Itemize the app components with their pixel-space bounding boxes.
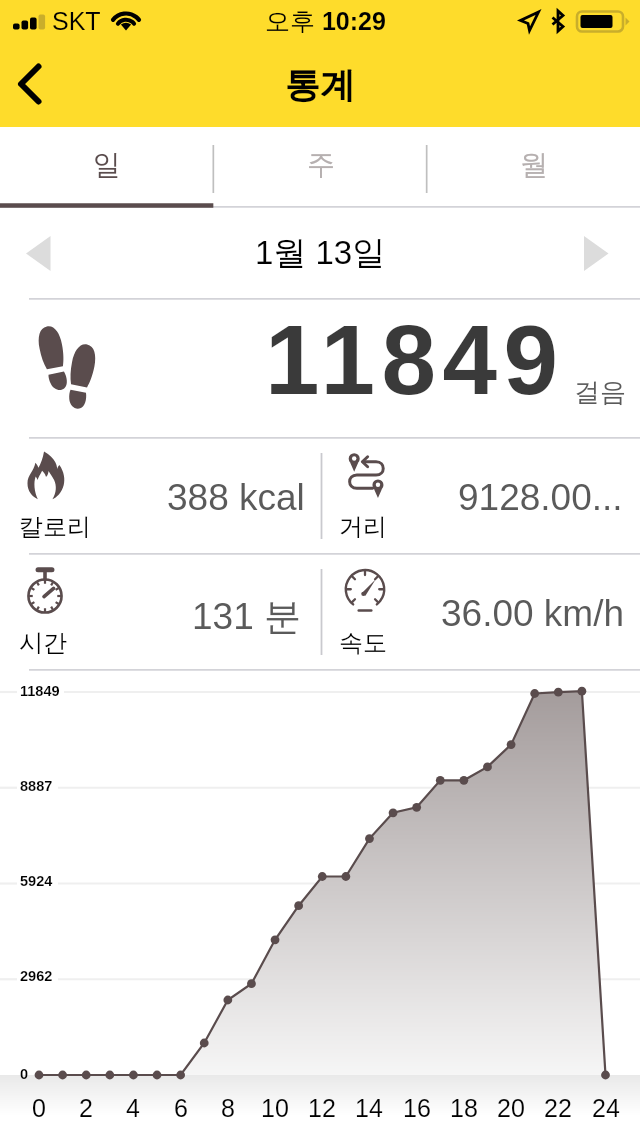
button[interactable]: 월 xyxy=(427,127,640,208)
staticText: 1월 13일 xyxy=(255,232,386,274)
staticText: 시간 xyxy=(19,628,67,658)
staticText: 8 xyxy=(221,1094,235,1122)
staticText: 오후 10:29 xyxy=(265,6,386,37)
staticText: 6 xyxy=(174,1094,188,1122)
staticText: 36.00 km/h xyxy=(441,593,625,634)
button[interactable]: 칼로리 xyxy=(0,439,320,555)
button[interactable]: Back xyxy=(0,55,62,127)
staticText: 9128.00... xyxy=(458,477,623,518)
staticText: 12 xyxy=(308,1094,336,1122)
staticText: 11849 xyxy=(265,305,565,414)
staticText: 0 xyxy=(20,1066,29,1082)
staticText: 24 xyxy=(592,1094,620,1122)
staticText: 388 kcal xyxy=(167,477,305,518)
staticText: 131 분 xyxy=(192,593,302,640)
staticText: 2962 xyxy=(20,968,53,984)
staticText: 18 xyxy=(450,1094,478,1122)
button[interactable]: 속도 xyxy=(320,555,640,671)
button[interactable]: Previous day xyxy=(0,208,86,300)
staticText: 4 xyxy=(126,1094,140,1122)
staticText: 14 xyxy=(355,1094,383,1122)
button[interactable]: 주 xyxy=(214,127,427,208)
button[interactable]: 일 xyxy=(0,127,214,208)
staticText: SKT xyxy=(52,7,101,35)
staticText: 20 xyxy=(497,1094,525,1122)
staticText: 일 xyxy=(93,147,121,182)
staticText: 걸음 xyxy=(574,376,626,409)
button[interactable]: Next day xyxy=(554,208,640,300)
staticText: 속도 xyxy=(339,628,387,658)
staticText: 0 xyxy=(32,1094,46,1122)
button[interactable]: 거리 xyxy=(320,439,640,555)
staticText: 통계 xyxy=(285,63,355,107)
staticText: 5924 xyxy=(20,873,53,889)
staticText: 주 xyxy=(307,147,335,182)
staticText: 16 xyxy=(403,1094,431,1122)
staticText: 10 xyxy=(261,1094,289,1122)
button[interactable]: 시간 xyxy=(0,555,320,671)
staticText: 22 xyxy=(544,1094,572,1122)
staticText: 11849 xyxy=(20,683,60,699)
staticText: 월 xyxy=(520,147,548,182)
staticText: 2 xyxy=(79,1094,93,1122)
staticText: 거리 xyxy=(339,512,387,542)
staticText: 8887 xyxy=(20,778,53,794)
staticText: 칼로리 xyxy=(19,512,91,542)
